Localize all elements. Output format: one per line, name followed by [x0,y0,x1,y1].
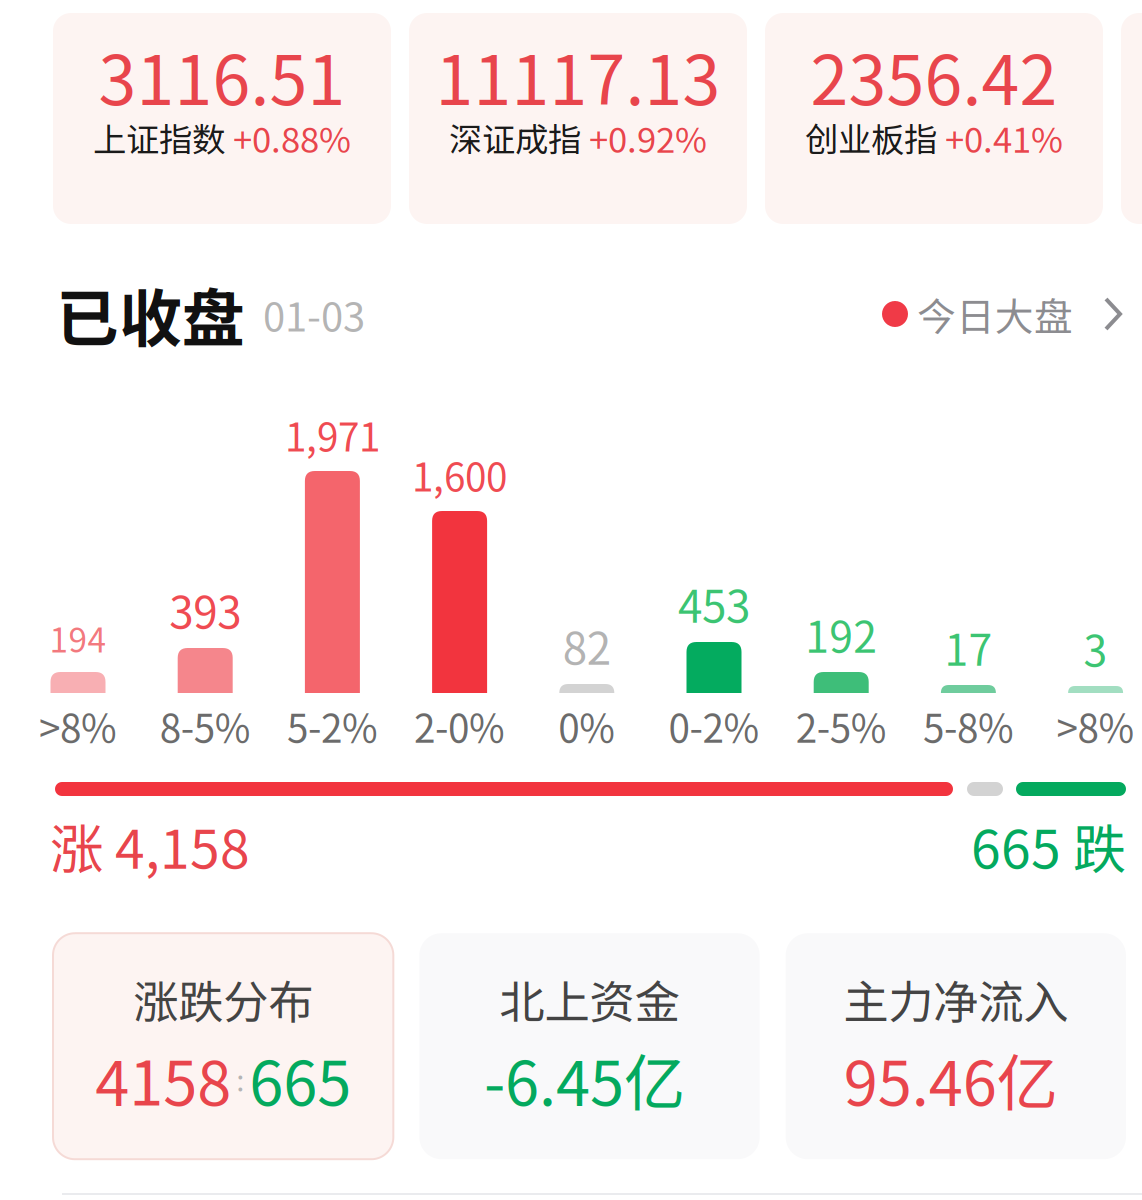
staticText: +0.41% [945,112,1063,163]
staticText: 0% [558,698,615,754]
staticText: -6.45亿 [484,1034,685,1123]
staticText: >8% [39,698,117,754]
staticText: 已收盘 [56,269,245,359]
button[interactable]: 2356.42 [765,13,1103,224]
staticText: 主力净流入 [843,966,1068,1032]
staticText: 2-0% [414,698,505,754]
button[interactable]: 11117.13 [409,13,747,224]
staticText: 95.46亿 [844,1034,1058,1123]
staticText: 8-5% [160,698,251,754]
staticText: +0.92% [589,112,707,163]
staticText: : [236,1058,244,1100]
staticText: 192 [805,603,877,665]
staticText: +0.88% [233,112,351,163]
staticText: 1,600 [412,447,507,503]
staticText: 5-2% [287,698,378,754]
staticText: 0-2% [668,698,759,754]
staticText: 665 跌 [971,807,1126,884]
staticText: 17 [944,616,992,678]
staticText: 453 [678,572,750,635]
button[interactable]: 北上资金 [419,933,760,1159]
staticText: 3116.51 [98,26,345,124]
staticText: 2-5% [796,698,887,754]
staticText: 涨 4,158 [50,807,250,884]
staticText: 1,971 [285,407,380,463]
staticText: 上证指数 [93,113,225,162]
staticText: 2356.42 [810,26,1057,124]
button[interactable]: 今日大盘 [882,286,1122,342]
staticText: 创业板指 [805,113,937,162]
staticText: >8% [1057,698,1135,754]
staticText: 393 [169,578,241,641]
staticText: 涨跌分布 [133,966,313,1032]
staticText: 3 [1084,617,1108,679]
staticText: 01-03 [263,285,365,343]
staticText: 82 [563,614,611,677]
button[interactable]: 3116.51 [53,13,391,224]
staticText: 北上资金 [499,966,679,1032]
staticText: 5-8% [923,698,1014,754]
staticText: 11117.13 [435,26,720,124]
staticText: 665 [249,1034,351,1123]
staticText: 深证成指 [449,113,581,162]
staticText: 今日大盘 [917,286,1073,342]
staticText: 4158 [95,1034,231,1123]
button[interactable]: 主力净流入 [786,933,1126,1159]
button[interactable]: 涨跌分布 [53,933,393,1159]
staticText: 194 [49,614,106,662]
